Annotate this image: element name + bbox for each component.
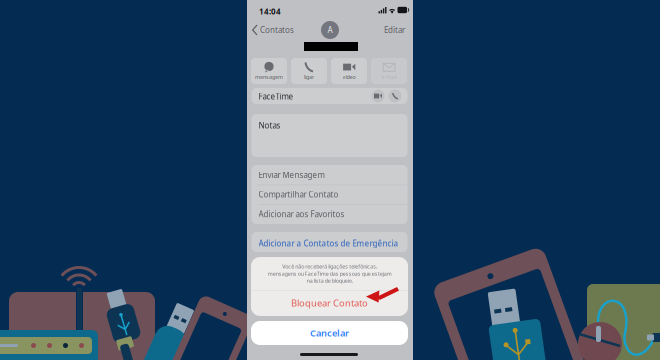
staticText: Bloquear Contato [291, 297, 368, 309]
staticText: A [327, 25, 332, 35]
button[interactable]: ligar [291, 58, 327, 84]
staticText: 14:04 [259, 6, 281, 17]
staticText: Cancelar [310, 327, 349, 339]
staticText: Adicionar a Contatos de Emergência [258, 238, 398, 249]
button[interactable]: Adicionar aos Favoritos [251, 204, 407, 224]
staticText: mensagem [255, 73, 283, 81]
button[interactable]: Adicionar a Contatos de Emergência [251, 232, 407, 252]
button[interactable]: Bloquear Contato [251, 290, 408, 316]
staticText: Notas [258, 120, 280, 131]
button[interactable]: e-mail [371, 58, 407, 84]
button[interactable]: vídeo [331, 58, 367, 84]
staticText: Editar [384, 25, 405, 35]
staticText: ligar [304, 73, 314, 81]
staticText: vídeo [342, 73, 355, 81]
staticText: Enviar Mensagem [258, 169, 324, 180]
staticText: Compartilhar Contato [258, 189, 338, 200]
button[interactable]: Cancelar [251, 321, 408, 345]
button[interactable]: Compartilhar Contato [251, 185, 407, 204]
staticText: Você não receberá ligações telefônicas, … [267, 263, 391, 284]
staticText: FaceTime [258, 91, 293, 102]
staticText: Contatos [260, 25, 294, 35]
staticText: e-mail [381, 73, 396, 81]
button[interactable]: mensagem [251, 58, 287, 84]
button[interactable]: Editar [378, 21, 411, 39]
button[interactable]: Contatos [246, 21, 300, 39]
staticText: Adicionar aos Favoritos [258, 209, 344, 219]
button[interactable]: Enviar Mensagem [251, 165, 407, 185]
